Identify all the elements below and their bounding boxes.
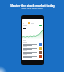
button[interactable]	[22, 54, 43, 58]
button[interactable]	[22, 46, 43, 50]
button[interactable]	[22, 50, 43, 54]
button[interactable]	[22, 21, 43, 25]
button[interactable]	[22, 42, 43, 46]
staticText: with real-time data	[21, 6, 43, 9]
staticText: Master the stock market today	[10, 4, 55, 8]
